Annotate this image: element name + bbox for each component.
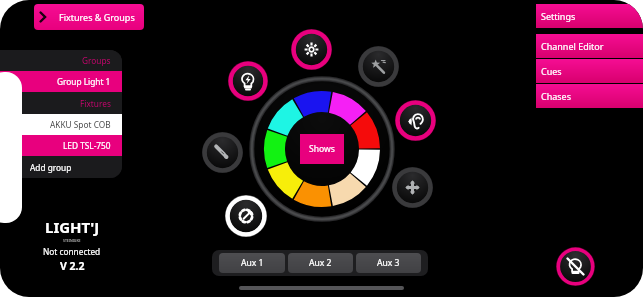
staticText: V 2.2 bbox=[60, 259, 85, 273]
button[interactable]: Colour picker bbox=[225, 195, 267, 237]
staticText: Aux 3 bbox=[377, 257, 400, 269]
button[interactable]: LED TSL-750 bbox=[0, 135, 122, 156]
button[interactable]: Aux 3 bbox=[356, 253, 421, 273]
button[interactable]: Brightness bbox=[291, 29, 332, 70]
staticText: Settings bbox=[541, 10, 576, 22]
button[interactable]: Sound to light bbox=[395, 100, 436, 141]
button[interactable]: Shows bbox=[300, 134, 344, 164]
staticText: Group Light 1 bbox=[57, 76, 111, 87]
button[interactable]: Settings bbox=[536, 4, 643, 28]
button[interactable]: Fixtures & Groups bbox=[34, 4, 144, 30]
button[interactable]: Chases bbox=[536, 84, 643, 108]
staticText: Channel Editor bbox=[541, 40, 604, 52]
staticText: Chases bbox=[541, 90, 571, 102]
button[interactable]: Fixtures bbox=[0, 92, 122, 114]
staticText: LED TSL-750 bbox=[63, 140, 111, 151]
button[interactable]: Groups bbox=[0, 50, 122, 71]
staticText: AKKU Spot COB bbox=[50, 119, 111, 130]
staticText: STEINIGKE bbox=[63, 238, 81, 243]
staticText: Fixtures bbox=[80, 98, 111, 109]
button[interactable]: Pan tilt bbox=[392, 167, 433, 208]
button[interactable]: Aux 2 bbox=[288, 253, 353, 273]
staticText: Groups bbox=[82, 55, 111, 66]
button[interactable]: Channel Editor bbox=[536, 34, 643, 58]
staticText: Aux 2 bbox=[309, 257, 332, 269]
button[interactable]: Blackout bbox=[556, 247, 595, 286]
staticText: Shows bbox=[309, 143, 335, 155]
button[interactable]: Colour brush bbox=[202, 132, 243, 173]
button[interactable]: Aux 1 bbox=[219, 253, 285, 273]
staticText: LIGHT'J bbox=[45, 217, 100, 237]
button[interactable]: Group Light 1 bbox=[0, 71, 122, 92]
button[interactable]: Strobe bbox=[228, 61, 268, 101]
staticText: Fixtures & Groups bbox=[59, 11, 135, 23]
staticText: Aux 1 bbox=[241, 257, 264, 269]
button[interactable]: Cues bbox=[536, 59, 643, 83]
button[interactable]: Add group bbox=[0, 156, 122, 178]
button[interactable]: AKKU Spot COB bbox=[0, 114, 122, 135]
staticText: Add group bbox=[30, 162, 72, 173]
staticText: Cues bbox=[541, 65, 562, 77]
button[interactable]: Effects bbox=[358, 46, 399, 87]
staticText: Not connected bbox=[43, 246, 101, 257]
